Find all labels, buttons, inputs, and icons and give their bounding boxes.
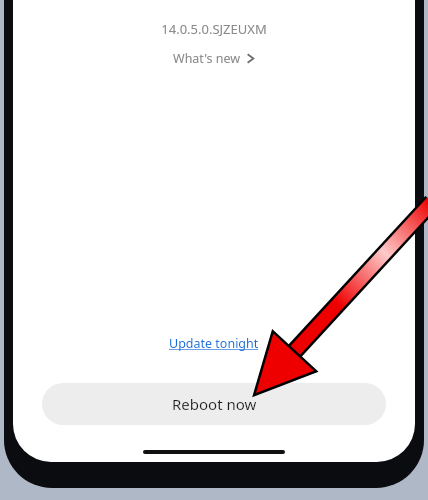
button[interactable]: Update tonight	[163, 332, 265, 355]
staticText: What's new	[173, 50, 241, 67]
staticText: Reboot now	[172, 394, 257, 414]
staticText: Update tonight	[169, 335, 259, 352]
button[interactable]: Reboot now	[42, 383, 386, 425]
button[interactable]: What's new	[165, 48, 263, 69]
staticText: 14.0.5.0.SJZEUXM	[161, 20, 267, 38]
